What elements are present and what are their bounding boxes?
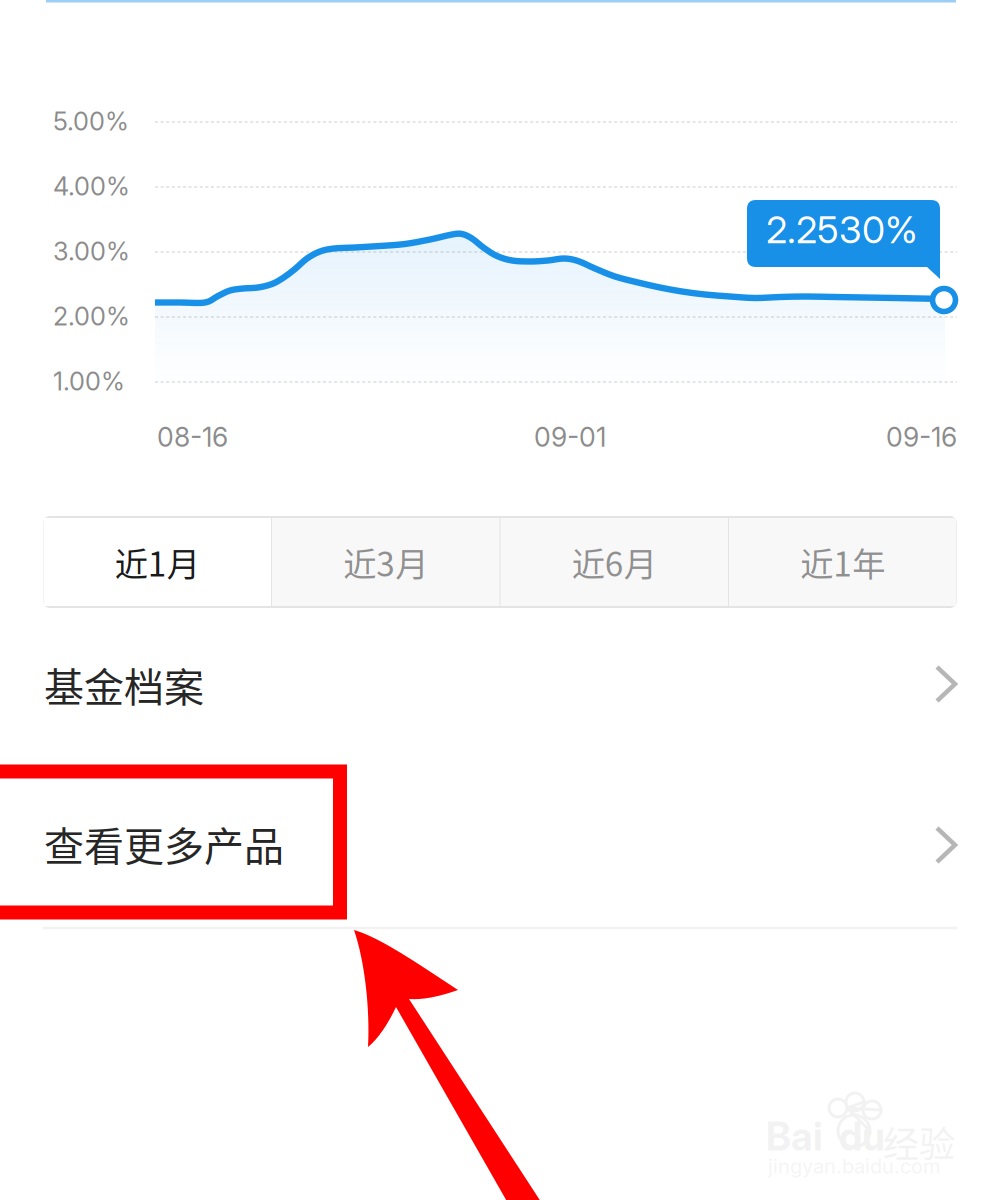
staticText: 2.00% — [53, 301, 130, 332]
staticText: 1.00% — [53, 366, 125, 397]
button[interactable]: 近3月 — [271, 516, 500, 608]
staticText: 2.2530% — [766, 207, 918, 252]
staticText: 查看更多产品 — [44, 814, 284, 872]
staticText: 5.00% — [53, 106, 129, 137]
staticText: 4.00% — [53, 171, 130, 202]
staticText: Bai — [766, 1113, 823, 1160]
staticText: 近6月 — [572, 538, 657, 586]
staticText: 近1年 — [800, 538, 885, 586]
staticText: 基金档案 — [44, 655, 204, 713]
staticText: 经验 — [883, 1116, 955, 1168]
button[interactable]: 近6月 — [500, 516, 728, 608]
staticText: 09-01 — [534, 421, 606, 453]
staticText: 近1月 — [115, 538, 200, 586]
button[interactable]: 近1月 — [43, 516, 271, 608]
staticText: 近3月 — [343, 538, 428, 586]
staticText: 09-16 — [886, 421, 957, 453]
staticText: jingyan.baidu.com — [768, 1154, 940, 1178]
staticText: 08-16 — [157, 421, 228, 453]
staticText: 3.00% — [53, 236, 130, 267]
button[interactable]: 查看更多产品 — [0, 766, 1000, 927]
button[interactable]: 基金档案 — [0, 615, 1000, 766]
staticText: du — [839, 1113, 885, 1160]
button[interactable]: 近1年 — [728, 516, 957, 608]
